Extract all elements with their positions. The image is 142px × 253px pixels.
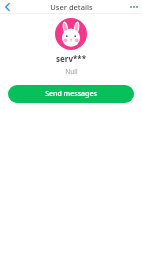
button[interactable]: More options xyxy=(126,0,142,14)
button[interactable]: Profile picture xyxy=(55,18,87,50)
staticText: User details xyxy=(50,2,93,12)
button[interactable]: Back xyxy=(0,0,14,14)
button[interactable]: Send messages xyxy=(8,85,134,103)
staticText: Send messages xyxy=(45,89,97,99)
staticText: serv*** xyxy=(56,53,86,64)
staticText: Null xyxy=(65,67,78,76)
